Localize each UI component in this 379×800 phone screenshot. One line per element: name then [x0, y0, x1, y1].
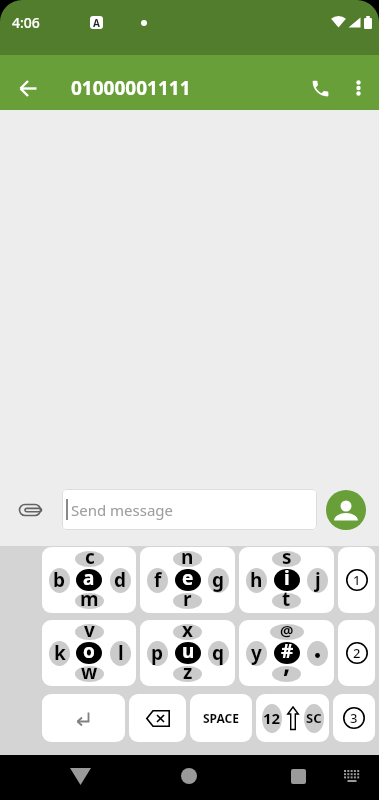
staticText: o: [83, 638, 95, 664]
button[interactable]: 12: [256, 694, 329, 742]
staticText: 2: [353, 644, 361, 662]
button[interactable]: x: [140, 620, 235, 686]
staticText: e: [182, 565, 194, 591]
staticText: 1: [353, 571, 361, 589]
staticText: SPACE: [203, 710, 239, 726]
staticText: 01000001111: [71, 75, 191, 101]
staticText: q: [212, 640, 225, 666]
staticText: Send message: [71, 500, 174, 520]
staticText: x: [182, 620, 193, 643]
button[interactable]: [42, 694, 125, 742]
staticText: A: [93, 16, 100, 29]
button[interactable]: 2: [338, 620, 375, 686]
staticText: t: [282, 586, 291, 612]
button[interactable]: Send message: [62, 489, 317, 530]
button[interactable]: [64, 760, 96, 792]
staticText: r: [183, 586, 192, 612]
staticText: 4:06: [12, 13, 40, 32]
staticText: b: [53, 567, 66, 593]
staticText: g: [212, 567, 225, 593]
button[interactable]: [326, 490, 366, 530]
button[interactable]: n: [140, 547, 235, 613]
staticText: m: [80, 586, 99, 612]
staticText: ,: [283, 645, 291, 680]
staticText: l: [118, 640, 124, 666]
button[interactable]: @: [239, 620, 334, 686]
button[interactable]: [340, 70, 376, 106]
staticText: d: [114, 567, 127, 593]
button[interactable]: [129, 694, 186, 742]
button[interactable]: [10, 490, 50, 530]
staticText: 12: [263, 708, 281, 728]
button[interactable]: v: [42, 620, 136, 686]
button[interactable]: [300, 68, 340, 108]
staticText: c: [85, 547, 95, 570]
button[interactable]: [282, 760, 314, 792]
staticText: #: [281, 638, 294, 664]
staticText: s: [282, 547, 292, 570]
button[interactable]: c: [42, 547, 136, 613]
button[interactable]: [173, 760, 205, 792]
staticText: w: [81, 659, 98, 685]
button[interactable]: SPACE: [190, 694, 252, 742]
button[interactable]: [12, 72, 44, 104]
staticText: j: [315, 567, 321, 593]
staticText: f: [154, 567, 162, 593]
button[interactable]: [339, 763, 365, 789]
staticText: h: [250, 567, 263, 593]
staticText: n: [181, 547, 194, 570]
staticText: SC: [306, 709, 322, 727]
button[interactable]: 1: [338, 547, 375, 613]
staticText: v: [84, 620, 95, 643]
staticText: a: [83, 565, 95, 591]
button[interactable]: s: [239, 547, 334, 613]
staticText: z: [183, 659, 193, 685]
staticText: 3: [350, 709, 358, 727]
button[interactable]: 3: [333, 694, 375, 742]
staticText: y: [251, 640, 262, 666]
staticText: k: [54, 640, 66, 666]
staticText: @: [280, 620, 294, 640]
staticText: p: [151, 640, 164, 666]
staticText: i: [284, 565, 290, 591]
staticText: u: [182, 638, 195, 664]
